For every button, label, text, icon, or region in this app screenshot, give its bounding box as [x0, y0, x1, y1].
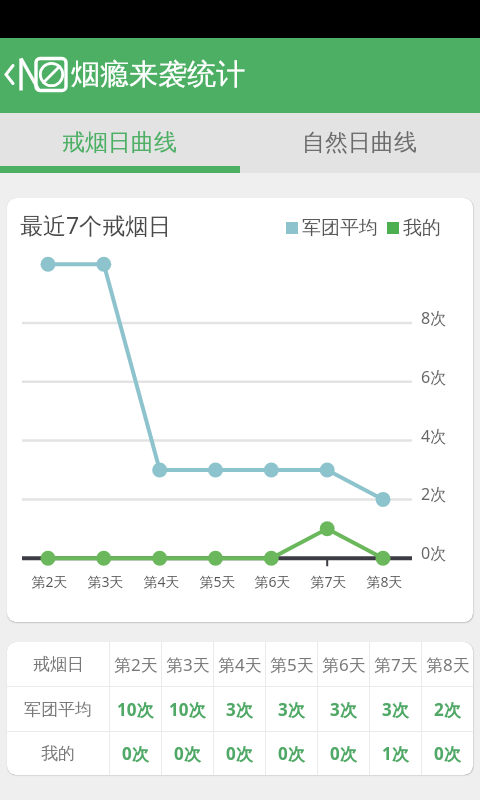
staticText: 2次: [434, 698, 461, 721]
staticText: 第8天: [426, 653, 470, 676]
staticText: 4次: [421, 425, 447, 447]
staticText: 军团平均: [302, 216, 378, 240]
staticText: 2次: [421, 483, 447, 505]
staticText: 6次: [421, 366, 447, 388]
staticText: 0次: [226, 742, 253, 765]
staticText: 第7天: [310, 572, 347, 591]
staticText: 我的: [403, 216, 441, 240]
staticText: 第8天: [366, 572, 403, 591]
staticText: 3次: [330, 698, 357, 721]
staticText: 戒烟日曲线: [62, 128, 177, 157]
staticText: 10次: [169, 698, 206, 721]
staticText: 第7天: [374, 653, 418, 676]
staticText: 第3天: [87, 572, 124, 591]
staticText: 第3天: [166, 653, 210, 676]
button[interactable]: 戒烟日曲线: [0, 113, 240, 173]
staticText: 0次: [278, 742, 305, 765]
staticText: 3次: [382, 698, 409, 721]
staticText: 10次: [117, 698, 154, 721]
staticText: 0次: [434, 742, 461, 765]
staticText: 8次: [421, 307, 447, 329]
staticText: 第6天: [254, 572, 291, 591]
staticText: 0次: [330, 742, 357, 765]
staticText: 0次: [174, 742, 201, 765]
staticText: 最近7个戒烟日: [20, 209, 172, 240]
staticText: 第5天: [199, 572, 236, 591]
staticText: 1次: [382, 742, 409, 765]
staticText: 我的: [41, 743, 75, 764]
staticText: 第5天: [270, 653, 314, 676]
staticText: 军团平均: [24, 699, 92, 720]
staticText: 第4天: [143, 572, 180, 591]
staticText: 3次: [226, 698, 253, 721]
staticText: 第2天: [31, 572, 68, 591]
staticText: 3次: [278, 698, 305, 721]
button[interactable]: Back: [0, 38, 66, 113]
staticText: 第4天: [218, 653, 262, 676]
staticText: 0次: [122, 742, 149, 765]
staticText: 戒烟日: [33, 654, 84, 675]
button[interactable]: 自然日曲线: [240, 113, 480, 173]
staticText: 烟瘾来袭统计: [71, 56, 245, 93]
staticText: 第2天: [114, 653, 158, 676]
staticText: 0次: [421, 542, 447, 564]
staticText: 自然日曲线: [302, 128, 417, 157]
staticText: 第6天: [322, 653, 366, 676]
